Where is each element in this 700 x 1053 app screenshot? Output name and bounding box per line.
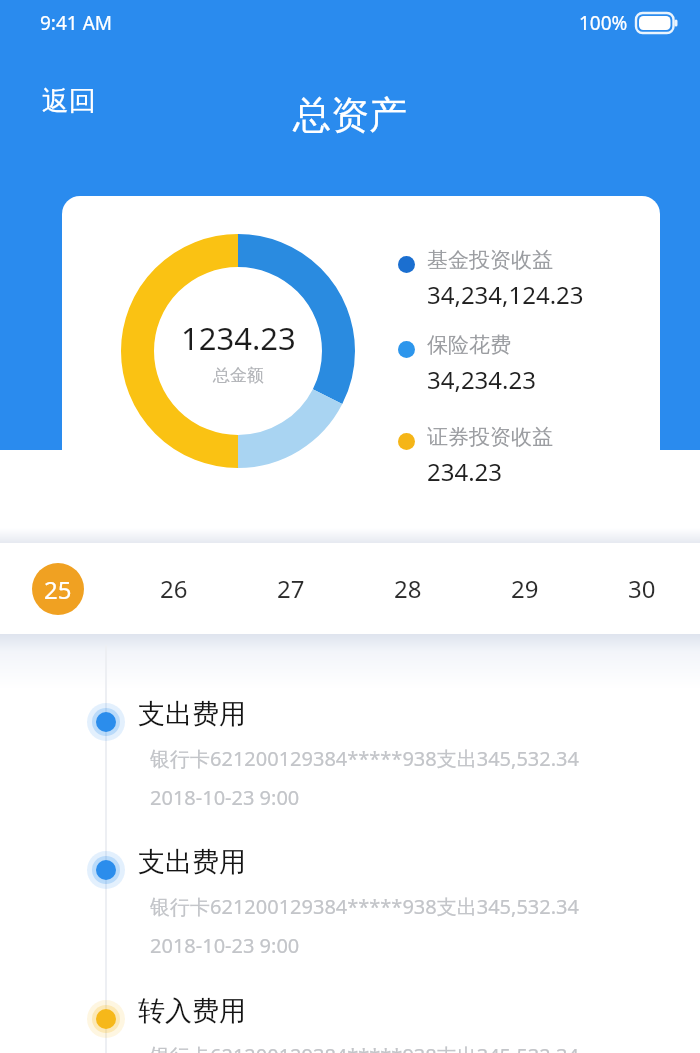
staticText: 2018-10-23 9:00 <box>150 784 300 811</box>
staticText: 银行卡621200129384*****938支出345,532.34 <box>150 893 579 920</box>
staticText: 30 <box>628 572 656 605</box>
button[interactable]: 29 <box>466 543 583 634</box>
staticText: 返回 <box>42 84 96 118</box>
staticText: 保险花费 <box>427 332 511 358</box>
staticText: 银行卡621200129384*****938支出345,532.34 <box>150 1042 579 1053</box>
staticText: 100% <box>579 10 628 36</box>
staticText: 34,234,124.23 <box>427 278 584 311</box>
staticText: 1234.23 <box>181 317 296 359</box>
button[interactable]: 支出费用 <box>138 845 678 959</box>
button[interactable]: 转入费用 <box>138 994 678 1053</box>
staticText: 证券投资收益 <box>427 424 553 450</box>
staticText: 29 <box>511 572 539 605</box>
button[interactable]: 证券投资收益 <box>398 424 658 488</box>
button[interactable]: 返回 <box>22 76 116 126</box>
staticText: 总资产 <box>0 91 700 139</box>
staticText: 27 <box>277 572 305 605</box>
button[interactable]: 25 <box>0 543 116 634</box>
button[interactable]: 28 <box>349 543 466 634</box>
staticText: 26 <box>160 572 188 605</box>
staticText: 转入费用 <box>138 994 246 1028</box>
button[interactable]: 26 <box>116 543 232 634</box>
staticText: 基金投资收益 <box>427 247 553 273</box>
staticText: 总金额 <box>213 365 264 386</box>
staticText: 25 <box>44 573 72 606</box>
staticText: 9:41 AM <box>40 10 113 36</box>
staticText: 支出费用 <box>138 697 246 731</box>
staticText: 28 <box>394 572 422 605</box>
staticText: 支出费用 <box>138 845 246 879</box>
button[interactable]: 27 <box>232 543 349 634</box>
button[interactable]: 支出费用 <box>138 697 678 811</box>
button[interactable]: 保险花费 <box>398 332 658 396</box>
staticText: 银行卡621200129384*****938支出345,532.34 <box>150 745 579 772</box>
staticText: 2018-10-23 9:00 <box>150 932 300 959</box>
staticText: 34,234.23 <box>427 363 536 396</box>
button[interactable]: 30 <box>583 543 700 634</box>
staticText: 234.23 <box>427 455 503 488</box>
button[interactable]: 基金投资收益 <box>398 247 658 311</box>
